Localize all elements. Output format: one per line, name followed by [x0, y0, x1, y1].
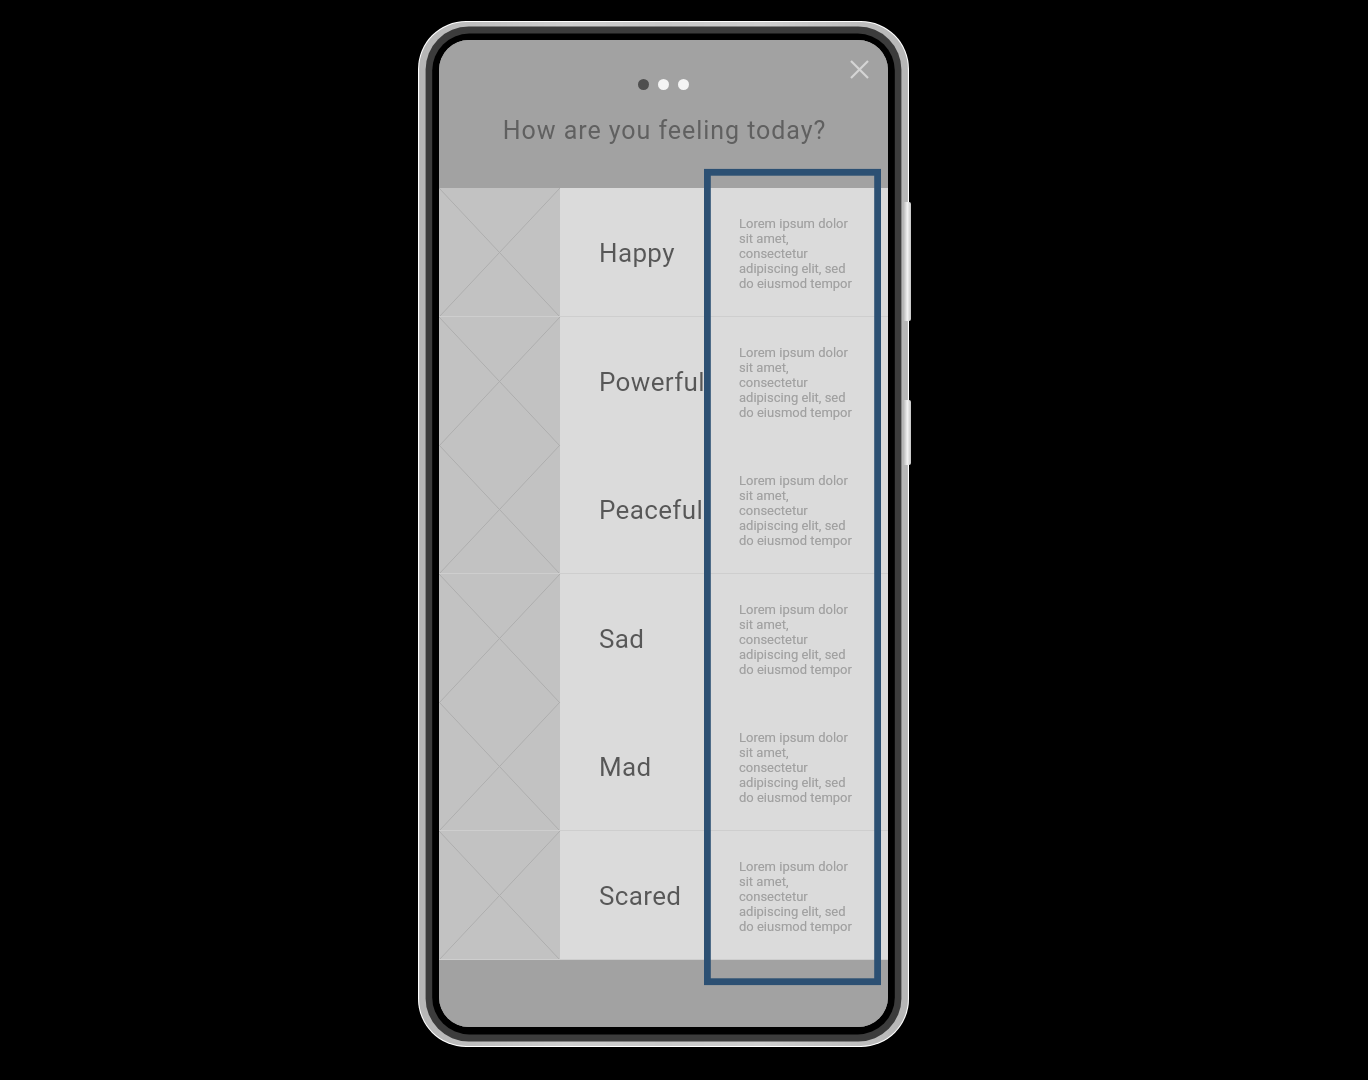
staticText: Lorem ipsum dolor sit amet, consectetur … [739, 473, 852, 548]
button[interactable]: Peaceful [439, 445, 888, 574]
staticText: Powerful [599, 367, 705, 397]
button[interactable]: Mad [439, 702, 888, 831]
staticText: Mad [599, 752, 652, 782]
staticText: Peaceful [599, 495, 704, 525]
button[interactable]: Happy [439, 188, 888, 317]
staticText: Lorem ipsum dolor sit amet, consectetur … [739, 859, 852, 934]
button[interactable]: Powerful [439, 317, 888, 446]
staticText: Lorem ipsum dolor sit amet, consectetur … [739, 602, 852, 677]
button[interactable]: Scared [439, 831, 888, 960]
staticText: Lorem ipsum dolor sit amet, consectetur … [739, 730, 852, 805]
staticText: Sad [599, 624, 645, 654]
staticText: Scared [599, 881, 682, 911]
staticText: Lorem ipsum dolor sit amet, consectetur … [739, 345, 852, 420]
button[interactable]: Close [837, 47, 881, 91]
staticText: Happy [599, 238, 675, 268]
staticText: Lorem ipsum dolor sit amet, consectetur … [739, 216, 852, 291]
staticText: How are you feeling today? [440, 116, 888, 145]
button[interactable]: Sad [439, 574, 888, 703]
